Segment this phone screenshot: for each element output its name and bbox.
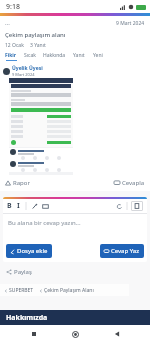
button[interactable]: Rapor bbox=[5, 179, 30, 187]
button[interactable]: Recents bbox=[26, 326, 42, 342]
staticText: 12 Ocak bbox=[5, 42, 24, 49]
button[interactable]: Source bbox=[131, 201, 143, 211]
staticText: Çekim paylaşım alanı bbox=[5, 31, 66, 39]
button[interactable]: B bbox=[7, 201, 12, 211]
staticText: 9 Mart 2024 bbox=[116, 20, 145, 27]
button[interactable]: Fikir bbox=[5, 52, 17, 61]
staticText: Çekim Paylaşım Alanı bbox=[44, 287, 94, 294]
staticText: Yanıt bbox=[73, 52, 85, 59]
button[interactable]: SUPERBET bbox=[4, 287, 34, 294]
staticText: Rapor bbox=[13, 179, 30, 187]
staticText: Cevap Yaz bbox=[111, 247, 140, 255]
staticText: 9 Mart 2024 bbox=[12, 72, 35, 77]
button[interactable]: Paylaş bbox=[6, 268, 150, 276]
staticText: Fikir bbox=[5, 52, 17, 59]
staticText: Sıcak bbox=[24, 52, 36, 59]
button[interactable]: Yanıt bbox=[73, 52, 85, 61]
staticText: Üyelik Üyesi bbox=[12, 65, 43, 72]
staticText: ... bbox=[5, 19, 10, 27]
button[interactable]: Hakkında bbox=[43, 52, 66, 61]
button[interactable]: Cevapla bbox=[114, 179, 145, 187]
button[interactable]: Cevap Yaz bbox=[100, 244, 144, 258]
staticText: 9:18 bbox=[6, 2, 20, 12]
button[interactable]: Insert image bbox=[42, 203, 49, 210]
button[interactable]: Back bbox=[109, 326, 125, 342]
staticText: SUPERBET bbox=[9, 287, 34, 294]
button[interactable]: Link bbox=[31, 203, 38, 210]
button[interactable]: Home bbox=[67, 326, 83, 342]
staticText: Dosya ekle bbox=[17, 247, 48, 255]
button[interactable]: Hakkımızda bbox=[6, 313, 48, 323]
staticText: 3 Yanıt bbox=[30, 42, 46, 49]
button[interactable]: I bbox=[17, 201, 20, 211]
button[interactable]: Sıcak bbox=[24, 52, 36, 61]
button[interactable]: Yeni bbox=[92, 52, 103, 61]
button[interactable]: Çekim Paylaşım Alanı bbox=[39, 287, 94, 294]
staticText: Hakkında bbox=[43, 52, 66, 59]
staticText: Cevapla bbox=[122, 179, 145, 187]
staticText: Bu alana bir cevap yazın... bbox=[8, 219, 81, 227]
staticText: Paylaş bbox=[14, 268, 32, 276]
staticText: Yeni bbox=[93, 52, 103, 59]
button[interactable]: Dosya ekle bbox=[6, 244, 52, 258]
button[interactable]: Undo bbox=[116, 203, 123, 210]
